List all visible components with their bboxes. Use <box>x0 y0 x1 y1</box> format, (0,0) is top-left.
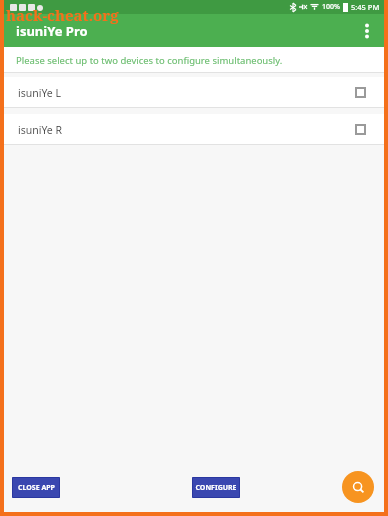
button[interactable]: CONFIGURE <box>192 477 240 498</box>
button[interactable]: isuniYe R <box>4 114 384 145</box>
button[interactable]: CLOSE APP <box>12 477 60 498</box>
staticText: 100% <box>322 2 340 12</box>
staticText: Please select up to two devices to confi… <box>16 54 283 67</box>
button[interactable]: Search <box>342 471 374 503</box>
staticText: isuniYe R <box>18 123 63 137</box>
staticText: CONFIGURE <box>195 483 237 493</box>
staticText: 5:45 PM <box>351 2 380 12</box>
button[interactable]: isuniYe L <box>4 77 384 108</box>
button[interactable]: More options <box>350 14 384 47</box>
staticText: CLOSE APP <box>18 483 55 493</box>
staticText: isuniYe Pro <box>16 22 88 40</box>
staticText: hack-cheat.org <box>6 5 119 25</box>
staticText: isuniYe L <box>18 86 61 100</box>
